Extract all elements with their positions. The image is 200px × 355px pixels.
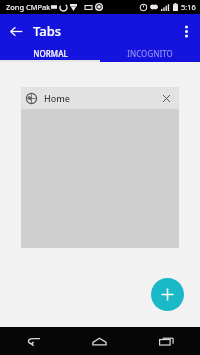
button[interactable]: Back	[0, 327, 66, 355]
staticText: 5:16	[181, 2, 196, 12]
staticText: Home	[44, 92, 156, 104]
staticText: Zong CMPak	[6, 2, 51, 12]
button[interactable]: NORMAL	[0, 47, 100, 60]
button[interactable]: More options	[175, 20, 197, 42]
button[interactable]: Home	[21, 87, 179, 248]
staticText: INCOGNITO	[127, 48, 173, 59]
button[interactable]: INCOGNITO	[100, 47, 200, 60]
button[interactable]: Recent apps	[133, 327, 200, 355]
staticText: Tabs	[33, 22, 62, 40]
button[interactable]: Close tab	[156, 88, 176, 108]
button[interactable]: Home	[66, 327, 133, 355]
button[interactable]: New tab	[151, 278, 184, 311]
staticText: NORMAL	[33, 48, 68, 59]
button[interactable]: Back	[4, 19, 28, 43]
